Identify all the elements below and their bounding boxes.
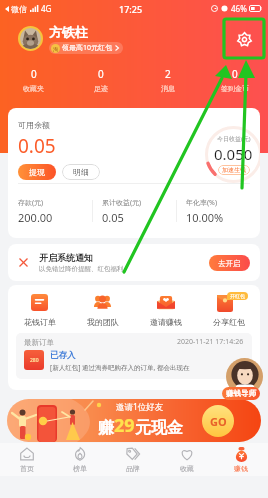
staticText: 46% <box>231 3 247 14</box>
button[interactable]: 首页 <box>0 443 53 476</box>
button[interactable]: 0 <box>67 60 134 100</box>
staticText: 我的团队 <box>87 317 119 327</box>
staticText: 开启系统通知 <box>39 252 93 263</box>
staticText: 今日收益(元) <box>217 135 251 143</box>
staticText: 提现 <box>29 167 45 177</box>
button[interactable]: 花钱订单 <box>8 285 71 333</box>
staticText: 已存入 <box>50 350 76 361</box>
staticText: 0 <box>232 67 238 81</box>
staticText: 邀请赚钱 <box>150 317 182 327</box>
button[interactable]: 去开启 <box>209 255 250 271</box>
button[interactable]: 0 <box>0 60 67 100</box>
staticText: 累计收益(元) <box>102 198 142 208</box>
staticText: 花钱订单 <box>24 317 56 327</box>
button[interactable]: 2 <box>134 60 201 100</box>
staticText: 收藏 <box>180 464 194 473</box>
staticText: 以免错过降价提醒、红包福利 <box>39 265 124 273</box>
staticText: 4G <box>41 3 52 14</box>
staticText: GO <box>210 414 227 429</box>
staticText: 29 <box>114 413 135 438</box>
staticText: 0.050 <box>214 144 253 164</box>
button[interactable]: 0 <box>201 60 268 100</box>
button[interactable]: Settings <box>230 25 258 53</box>
button[interactable]: GO <box>202 405 234 437</box>
staticText: 收藏夹 <box>23 84 44 93</box>
button[interactable]: 加速生钱 <box>218 165 250 175</box>
button[interactable]: 赚钱 <box>214 443 268 476</box>
button[interactable]: 邀请1位好友 <box>7 399 261 442</box>
button[interactable]: 淘 <box>49 42 123 54</box>
staticText: 分享红包 <box>213 317 245 327</box>
staticText: 加速生钱 <box>222 166 246 174</box>
button[interactable]: 收藏 <box>160 443 214 476</box>
staticText: 赚钱导师 <box>226 389 256 398</box>
staticText: 赚 <box>98 418 114 438</box>
staticText: 存款(元) <box>18 198 44 208</box>
staticText: 0 <box>31 67 37 81</box>
button[interactable]: 我的团队 <box>71 285 134 333</box>
button[interactable]: 邀请赚钱 <box>134 285 197 333</box>
staticText: 方铁柱 <box>49 24 88 40</box>
staticText: 0.05 <box>102 210 124 225</box>
staticText: 足迹 <box>94 84 108 93</box>
staticText: 领最高10元红包 <box>62 43 113 53</box>
button[interactable]: 累计收益(元) <box>102 198 142 225</box>
staticText: 赚钱 <box>234 464 248 473</box>
staticText: 品牌 <box>126 464 140 473</box>
button[interactable]: 存款(元) <box>18 198 53 225</box>
staticText: 0.05 <box>18 133 56 159</box>
staticText: 首页 <box>20 464 34 473</box>
staticText: 最新订单 <box>24 338 54 347</box>
button[interactable]: 赚钱导师 <box>222 358 268 400</box>
staticText: 微信 <box>11 4 27 14</box>
button[interactable]: 提现 <box>18 164 56 180</box>
staticText: 消息 <box>161 84 175 93</box>
staticText: 可用余额 <box>18 120 50 130</box>
staticText: 邀请1位好友 <box>116 401 164 413</box>
button[interactable]: 年化率(%) <box>186 198 224 225</box>
staticText: [新人红包] 通过淘券吧购存入的订单, 都会出现在 <box>50 363 190 372</box>
staticText: 0 <box>98 67 104 81</box>
staticText: 2 <box>165 67 171 81</box>
button[interactable]: 榜单 <box>53 443 106 476</box>
staticText: 去开启 <box>218 259 241 268</box>
button[interactable]: 明细 <box>62 164 100 180</box>
staticText: 榜单 <box>73 464 87 473</box>
staticText: 2020-11-21 17:14:26 <box>177 337 244 347</box>
staticText: 淘 <box>53 46 58 52</box>
staticText: 年化率(%) <box>186 198 218 208</box>
staticText: 10.00% <box>186 210 224 225</box>
staticText: 签到金币 <box>221 84 249 93</box>
button[interactable]: 开红包 <box>197 285 260 333</box>
button[interactable]: 品牌 <box>106 443 160 476</box>
staticText: 280 <box>30 357 39 364</box>
staticText: 17:25 <box>119 3 143 15</box>
staticText: 开红包 <box>230 293 245 299</box>
staticText: 明细 <box>73 167 89 177</box>
button[interactable]: 最新订单 <box>16 333 252 379</box>
staticText: 元现金 <box>135 418 183 438</box>
staticText: 200.00 <box>18 210 53 225</box>
button[interactable]: 开启系统通知 <box>8 244 260 281</box>
